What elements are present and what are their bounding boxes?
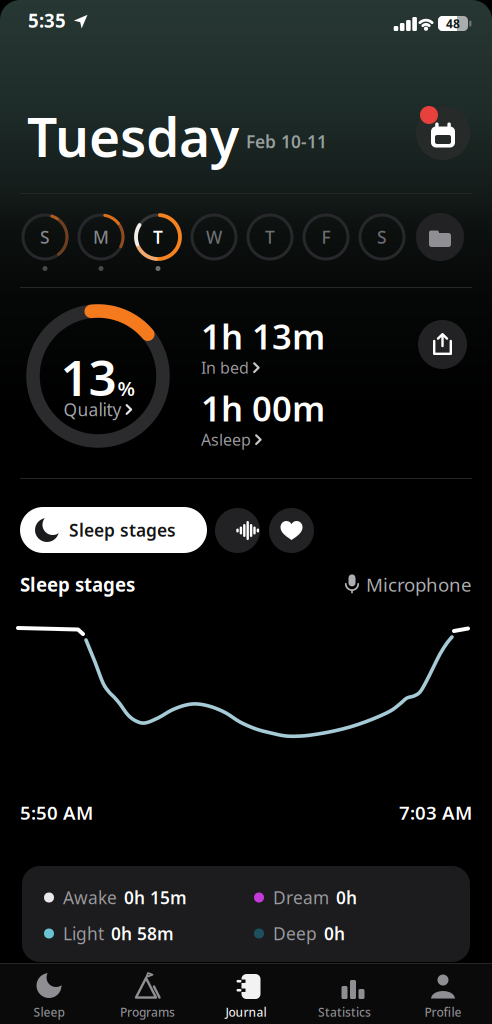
button[interactable]: Profile xyxy=(395,968,491,1024)
button[interactable] xyxy=(269,508,314,553)
button[interactable]: M xyxy=(79,215,123,259)
button[interactable]: 1h 00m xyxy=(201,385,325,452)
button[interactable]: W xyxy=(192,215,236,259)
staticText: Sleep xyxy=(33,1004,64,1020)
button[interactable]: Programs xyxy=(99,968,195,1024)
staticText: Sleep stages xyxy=(69,518,176,541)
button[interactable]: Sleep stages xyxy=(20,507,207,553)
staticText: Microphone xyxy=(366,572,472,597)
staticText: 5:50 AM xyxy=(20,800,93,825)
button[interactable]: Sleep xyxy=(1,968,97,1024)
button[interactable] xyxy=(418,320,467,369)
staticText: Statistics xyxy=(318,1004,371,1020)
button[interactable]: F xyxy=(304,215,348,259)
staticText: 1h 00m xyxy=(201,385,325,431)
button[interactable]: S xyxy=(23,215,67,259)
staticText: 13 xyxy=(60,344,116,409)
staticText: 7:03 AM xyxy=(399,800,472,825)
staticText: Awake xyxy=(63,886,117,909)
button[interactable] xyxy=(416,213,464,261)
staticText: Deep xyxy=(273,922,317,945)
staticText: F xyxy=(321,225,330,248)
staticText: 0h 15m xyxy=(124,886,187,909)
staticText: M xyxy=(93,225,109,248)
staticText: Feb 10-11 xyxy=(246,130,327,153)
staticText: % xyxy=(117,375,135,401)
button[interactable]: Journal xyxy=(198,968,294,1024)
button[interactable]: Microphone xyxy=(344,572,472,597)
button[interactable]: 1h 13m xyxy=(201,313,325,380)
staticText: 0h xyxy=(324,922,345,945)
button[interactable]: T xyxy=(136,215,180,259)
staticText: 1h 13m xyxy=(201,313,325,359)
button[interactable]: S xyxy=(360,215,404,259)
staticText: T xyxy=(153,225,163,248)
staticText: Programs xyxy=(120,1004,175,1020)
staticText: Light xyxy=(63,922,104,945)
staticText: T xyxy=(265,225,275,248)
button[interactable]: 13 xyxy=(26,304,170,448)
staticText: 0h 58m xyxy=(111,922,174,945)
button[interactable]: Statistics xyxy=(296,968,392,1024)
staticText: 48 xyxy=(446,15,460,31)
button[interactable] xyxy=(416,106,470,160)
staticText: Dream xyxy=(273,886,329,909)
staticText: Profile xyxy=(424,1004,461,1020)
staticText: Journal xyxy=(225,1004,266,1020)
staticText: Asleep xyxy=(201,429,251,450)
staticText: Sleep stages xyxy=(20,572,135,597)
staticText: In bed xyxy=(201,357,249,378)
staticText: W xyxy=(206,225,222,248)
staticText: S xyxy=(40,225,50,248)
staticText: Quality xyxy=(63,398,121,421)
staticText: S xyxy=(377,225,387,248)
staticText: 0h xyxy=(336,886,357,909)
staticText: 5:35 xyxy=(28,8,66,33)
button[interactable] xyxy=(215,508,260,553)
button[interactable]: T xyxy=(248,215,292,259)
staticText: Tuesday xyxy=(27,101,239,172)
